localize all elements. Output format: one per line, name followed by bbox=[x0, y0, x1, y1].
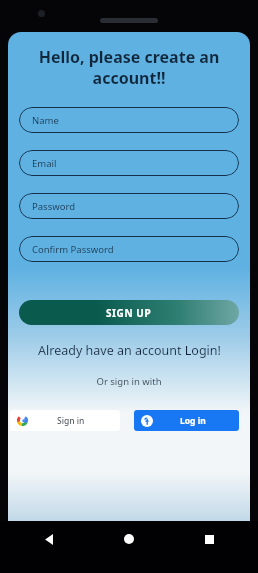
staticText: Hello, please create an account!! bbox=[16, 46, 242, 89]
button[interactable]: Password bbox=[19, 193, 239, 219]
button[interactable]: Log in bbox=[134, 410, 239, 431]
staticText: Name bbox=[32, 114, 59, 127]
button[interactable]: Already have an account Login! bbox=[8, 342, 250, 359]
staticText: Email bbox=[32, 157, 57, 170]
staticText: Or sign in with bbox=[96, 375, 162, 388]
staticText: Log in bbox=[180, 415, 206, 427]
button[interactable]: SIGN UP bbox=[19, 300, 239, 325]
button[interactable]: Recent apps bbox=[196, 526, 222, 552]
button[interactable]: Home bbox=[116, 526, 142, 552]
staticText: SIGN UP bbox=[106, 306, 152, 320]
button[interactable]: Sign in bbox=[10, 410, 120, 431]
staticText: Sign in bbox=[57, 415, 85, 427]
button[interactable]: Email bbox=[19, 150, 239, 176]
staticText: Already have an account Login! bbox=[38, 342, 221, 359]
button[interactable]: Confirm Password bbox=[19, 236, 239, 262]
staticText: Password bbox=[32, 200, 75, 213]
button[interactable]: Back bbox=[36, 526, 62, 552]
button[interactable]: Name bbox=[19, 107, 239, 133]
staticText: Confirm Password bbox=[32, 243, 114, 256]
